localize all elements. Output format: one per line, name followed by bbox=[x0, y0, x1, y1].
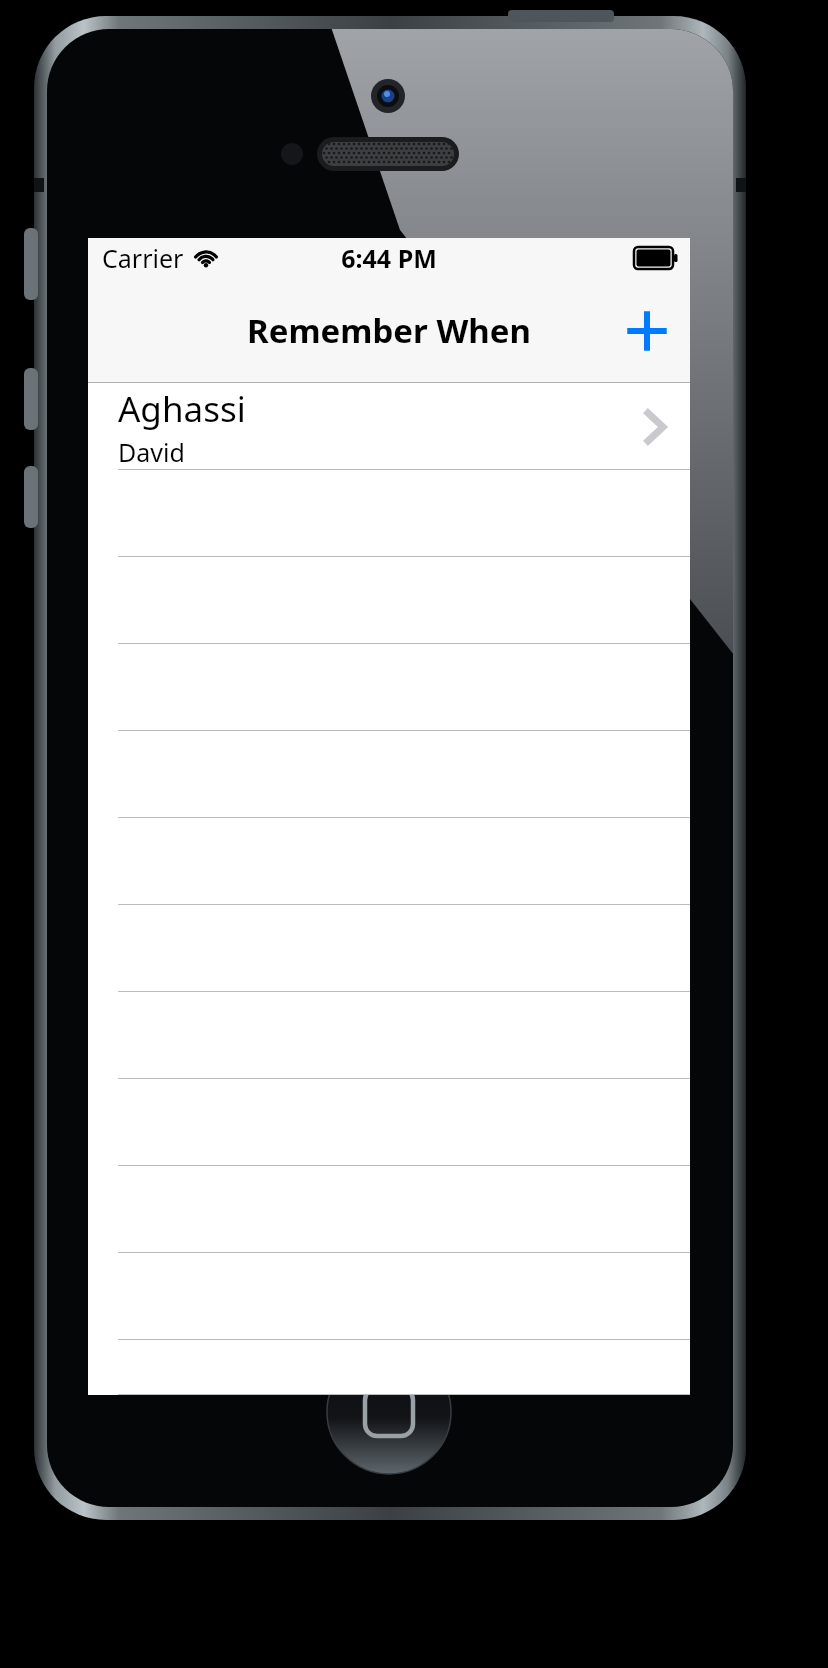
staticText: David bbox=[118, 435, 185, 469]
staticText: Remember When bbox=[247, 308, 531, 353]
button[interactable]: Add bbox=[613, 297, 681, 365]
staticText: Carrier bbox=[102, 241, 184, 275]
staticText: 6:44 PM bbox=[341, 241, 437, 275]
button[interactable]: Aghassi bbox=[88, 383, 690, 470]
staticText: Aghassi bbox=[118, 385, 246, 433]
